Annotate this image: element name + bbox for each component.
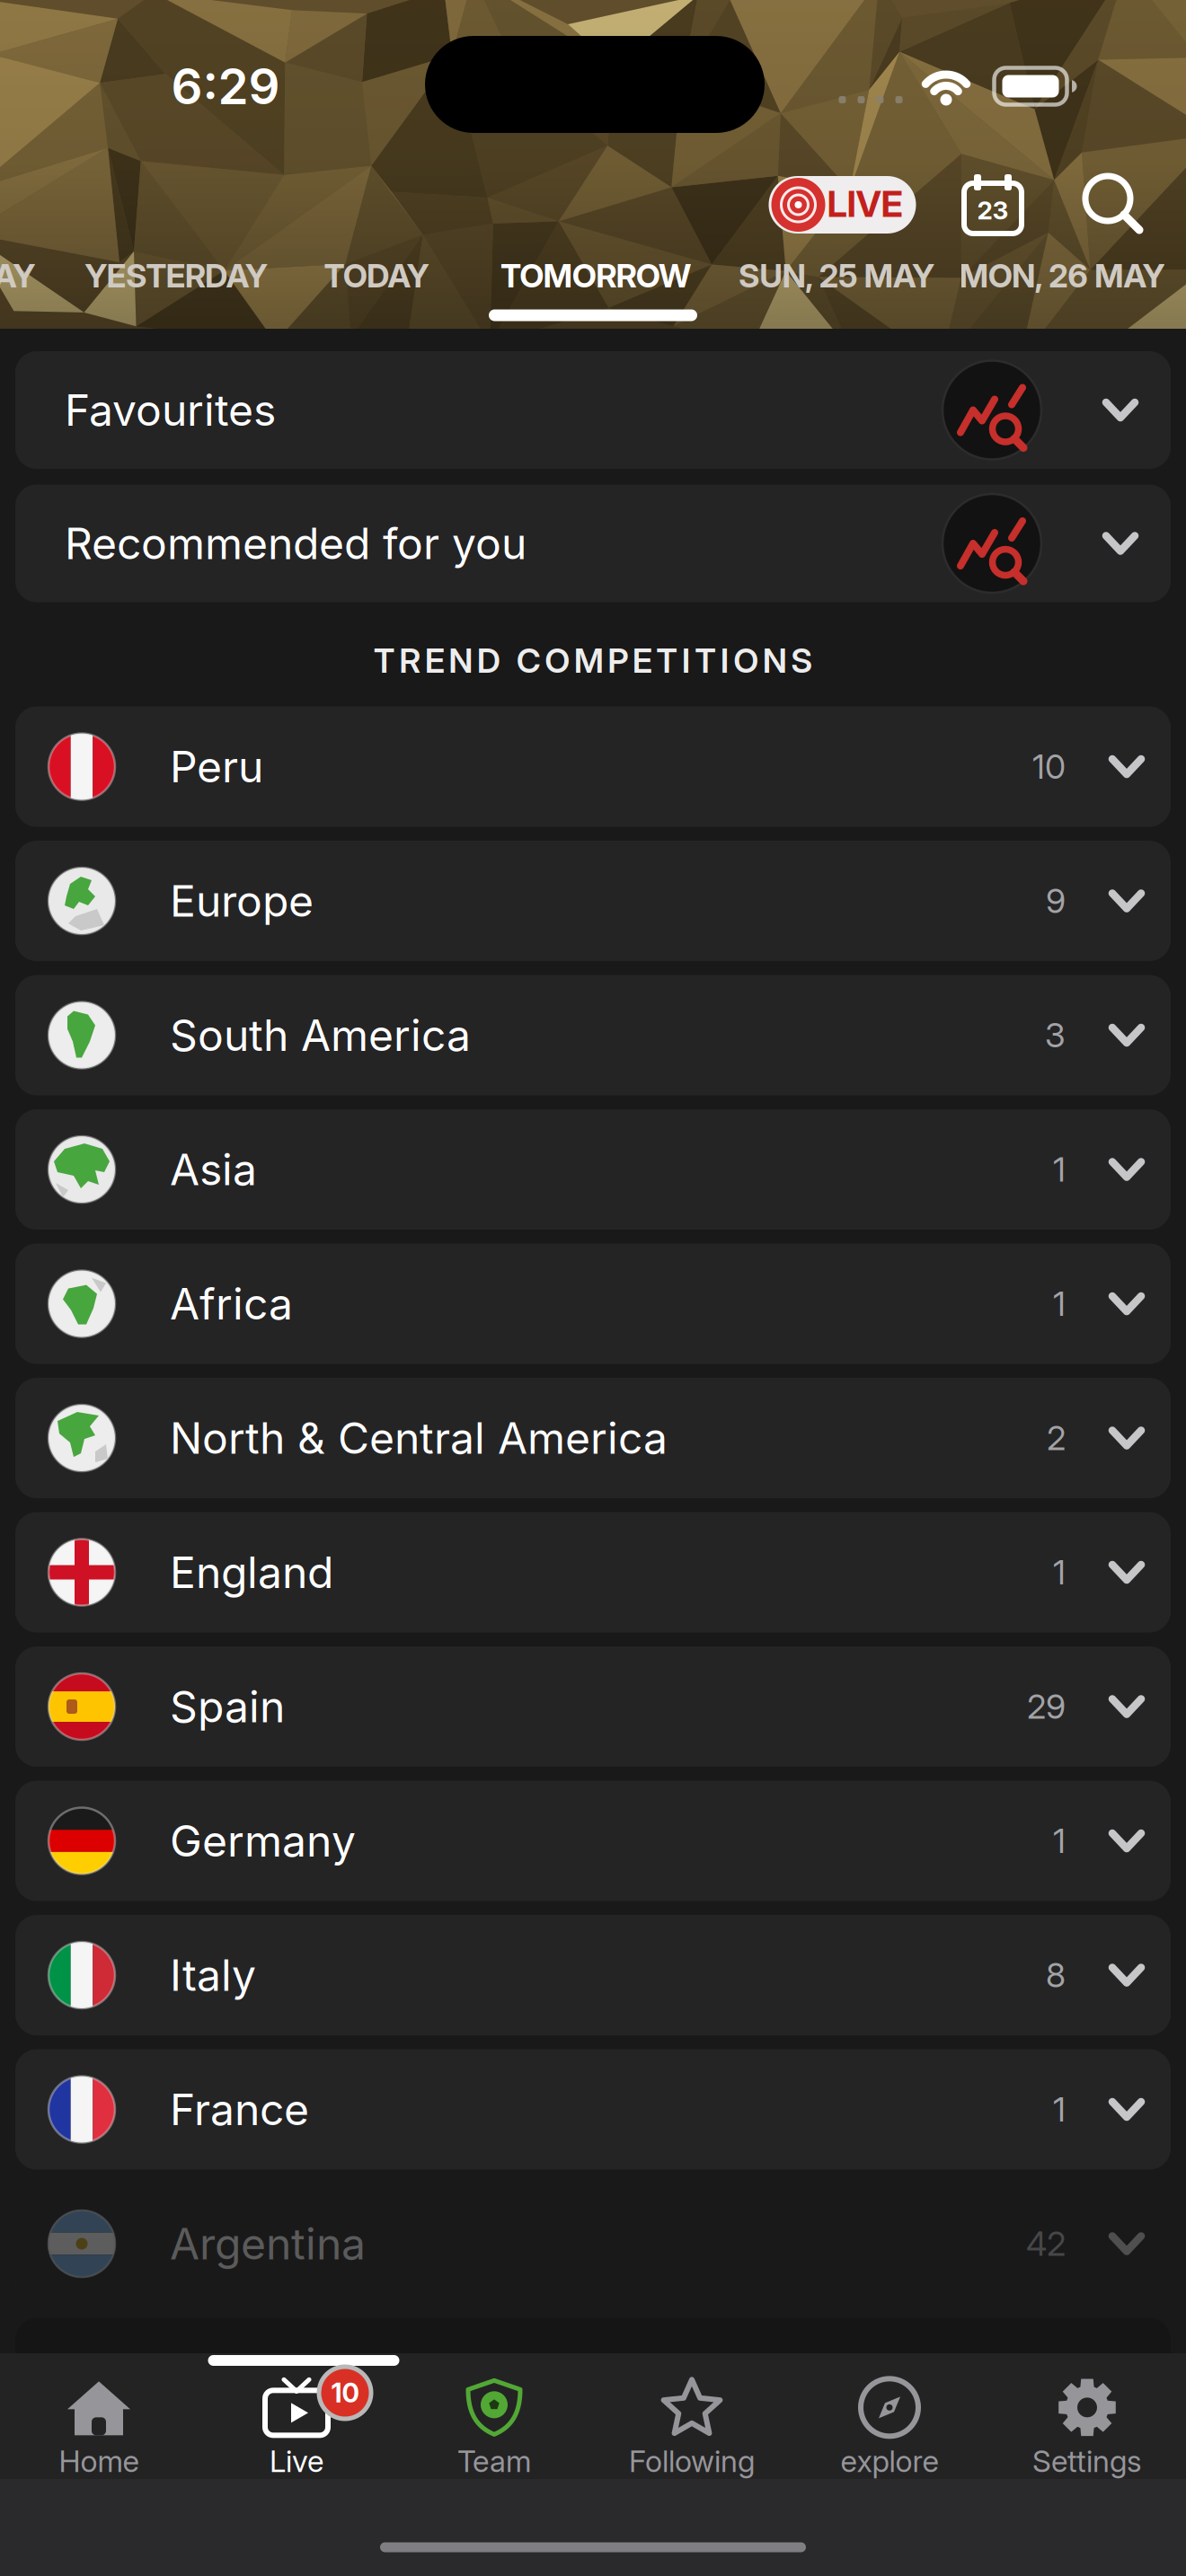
staticText: Argentina xyxy=(170,2218,366,2269)
staticText: SUN, 25 MAY xyxy=(739,257,934,295)
button[interactable]: Team xyxy=(395,2369,593,2489)
button[interactable]: Spain xyxy=(15,1646,1171,1767)
button[interactable]: France xyxy=(15,2049,1171,2170)
staticText: TODAY xyxy=(324,257,429,295)
staticText: 42 xyxy=(1026,2224,1066,2263)
staticText: Africa xyxy=(170,1278,293,1329)
staticText: South America xyxy=(170,1010,471,1061)
staticText: Asia xyxy=(170,1144,257,1195)
staticText: 1 xyxy=(1053,2090,1066,2129)
button[interactable]: TODAY xyxy=(324,257,429,295)
staticText: 6:29 xyxy=(171,57,280,115)
staticText: YESTERDAY xyxy=(85,257,267,295)
staticText: explore xyxy=(841,2443,938,2479)
button[interactable]: Germany xyxy=(15,1781,1171,1901)
staticText: 2 xyxy=(1047,1418,1066,1458)
button[interactable]: explore xyxy=(791,2369,988,2489)
button[interactable]: Italy xyxy=(15,1915,1171,2035)
button[interactable]: Home xyxy=(0,2369,198,2489)
staticText: TOMORROW xyxy=(500,257,691,295)
staticText: AY xyxy=(0,257,35,295)
staticText: 10 xyxy=(1032,747,1066,786)
button[interactable]: Recommended for you xyxy=(15,485,1171,602)
button[interactable]: AY xyxy=(0,257,35,295)
button[interactable]: Argentina xyxy=(15,2183,1171,2304)
button[interactable]: Live xyxy=(198,2369,395,2489)
button[interactable]: Africa xyxy=(15,1244,1171,1364)
staticText: Settings xyxy=(1032,2443,1142,2479)
staticText: Following xyxy=(629,2443,755,2479)
staticText: MON, 26 MAY xyxy=(959,257,1165,295)
staticText: 1 xyxy=(1053,1150,1066,1189)
button[interactable]: Calendar xyxy=(963,176,1022,235)
staticText: 1 xyxy=(1053,1284,1066,1323)
button[interactable]: LIVE xyxy=(769,176,916,234)
staticText: Spain xyxy=(170,1681,285,1732)
button[interactable]: SUN, 25 MAY xyxy=(739,257,934,295)
staticText: 3 xyxy=(1045,1015,1066,1055)
staticText: Peru xyxy=(170,741,263,792)
button[interactable]: Peru xyxy=(15,706,1171,827)
staticText: Recommended for you xyxy=(65,518,527,569)
staticText: Team xyxy=(457,2443,531,2479)
staticText: North & Central America xyxy=(170,1413,668,1463)
staticText: 29 xyxy=(1027,1687,1066,1726)
button[interactable]: MON, 26 MAY xyxy=(959,257,1165,295)
staticText: Favourites xyxy=(65,385,276,435)
staticText: Italy xyxy=(170,1950,256,2001)
button[interactable]: England xyxy=(15,1512,1171,1632)
button[interactable]: Settings xyxy=(988,2369,1186,2489)
staticText: 8 xyxy=(1046,1955,1066,1995)
staticText: 9 xyxy=(1046,881,1066,921)
staticText: 1 xyxy=(1053,1553,1066,1592)
staticText: France xyxy=(170,2084,309,2135)
staticText: TREND COMPETITIONS xyxy=(374,641,812,680)
button[interactable]: North & Central America xyxy=(15,1378,1171,1498)
button[interactable]: Asia xyxy=(15,1109,1171,1230)
staticText: Home xyxy=(59,2443,139,2479)
button[interactable]: YESTERDAY xyxy=(85,257,267,295)
button[interactable]: South America xyxy=(15,975,1171,1095)
button[interactable]: Search xyxy=(1084,174,1143,234)
button[interactable]: More competitions xyxy=(15,2318,1171,2438)
staticText: 1 xyxy=(1053,1821,1066,1861)
button[interactable]: Europe xyxy=(15,841,1171,961)
button[interactable]: Favourites xyxy=(15,351,1171,469)
staticText: LIVE xyxy=(827,183,903,225)
staticText: Europe xyxy=(170,875,314,926)
staticText: 23 xyxy=(977,195,1009,225)
staticText: 10 xyxy=(331,2377,359,2408)
staticText: Germany xyxy=(170,1815,356,1866)
staticText: Live xyxy=(270,2443,323,2479)
button[interactable]: Following xyxy=(593,2369,791,2489)
staticText: England xyxy=(170,1547,333,1598)
button[interactable]: TOMORROW xyxy=(500,257,691,295)
